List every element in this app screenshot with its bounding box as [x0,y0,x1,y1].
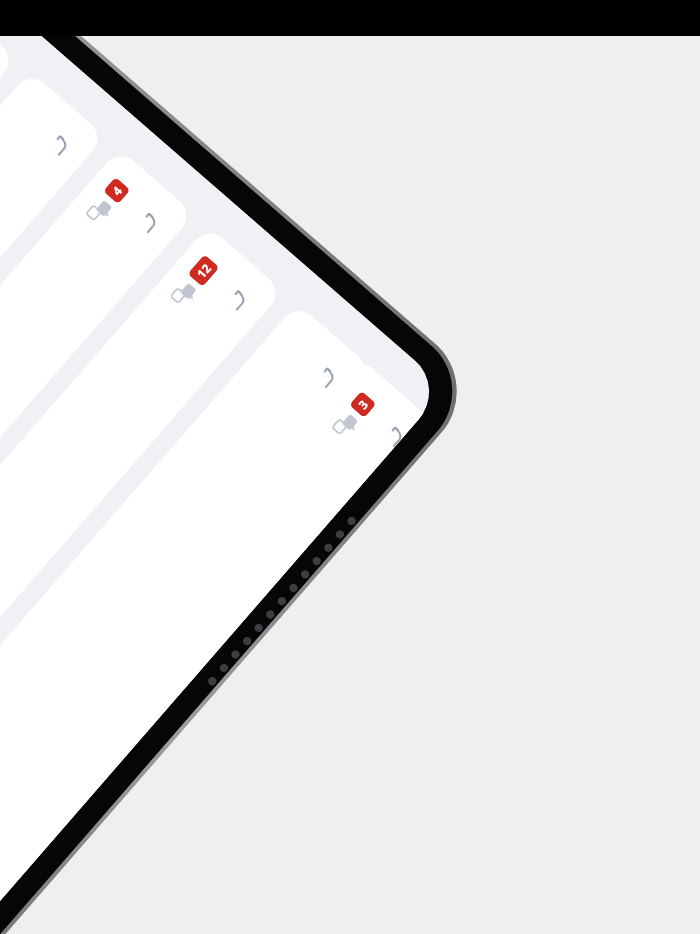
button[interactable]: Q3 Budget Sync [0,0,16,731]
button[interactable]: Open meeting [41,127,78,164]
button[interactable]: Open meeting [308,359,345,396]
staticText: 12 [193,260,214,281]
button[interactable]: Hiring Debrief [0,303,373,934]
staticText: 4 [108,183,125,198]
button[interactable]: Open meeting [368,411,404,448]
button[interactable]: Weekly Retrospective [0,362,424,934]
staticText: 3 [354,397,371,412]
button[interactable]: Design Critique [0,71,106,808]
button[interactable]: Roadmap Planning [0,226,284,934]
button[interactable]: Vendor Negotiation [0,148,195,885]
staticText: Investment Options Review [0,817,9,934]
button[interactable]: Open meeting [376,418,408,451]
button[interactable]: Open meeting [130,204,167,241]
button[interactable]: Investment Options Review [0,355,424,934]
button[interactable]: Open meeting [219,282,256,318]
